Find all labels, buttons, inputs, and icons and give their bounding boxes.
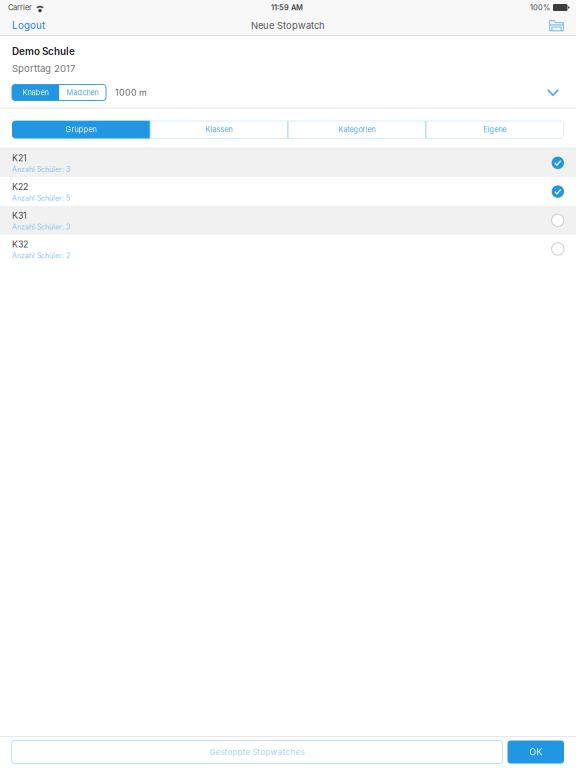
staticText: 100% [530, 3, 550, 12]
button[interactable]: Folders [539, 15, 576, 36]
button[interactable]: Logout [0, 15, 55, 36]
staticText: Klassen [205, 125, 232, 134]
staticText: K22 [12, 181, 28, 192]
staticText: 1000 m [115, 87, 147, 98]
staticText: Carrier [8, 3, 32, 12]
staticText: Kategorien [338, 125, 375, 134]
staticText: Mädchen [66, 88, 98, 97]
button[interactable]: Klassen [150, 121, 288, 138]
button[interactable]: Gruppen [12, 121, 150, 138]
staticText: K21 [12, 153, 27, 163]
staticText: Anzahl Schüler: 2 [12, 251, 70, 260]
staticText: Neue Stopwatch [251, 20, 325, 31]
button[interactable]: K22 [0, 177, 576, 206]
button[interactable]: Kategorien [288, 121, 426, 138]
staticText: OK [529, 747, 542, 757]
staticText: Eigene [483, 125, 506, 134]
staticText: Anzahl Schüler: 3 [12, 223, 70, 231]
button[interactable]: Knaben [12, 84, 59, 100]
staticText: K32 [12, 239, 28, 249]
staticText: Anzahl Schüler: 5 [12, 194, 70, 202]
staticText: Anzahl Schüler: 3 [12, 165, 70, 174]
button[interactable]: OK [507, 740, 564, 763]
staticText: Logout [12, 19, 45, 31]
staticText: 11:59 AM [271, 3, 303, 12]
button[interactable]: Mädchen [59, 84, 106, 100]
staticText: Gruppen [65, 125, 96, 134]
button[interactable]: K32 [0, 235, 576, 263]
staticText: Sporttag 2017 [12, 63, 75, 74]
staticText: K31 [12, 210, 27, 221]
button[interactable]: Expand [542, 84, 564, 101]
button[interactable]: Eigene [426, 121, 564, 138]
button[interactable]: K21 [0, 148, 576, 177]
button[interactable]: K31 [0, 206, 576, 235]
staticText: Knaben [22, 88, 48, 97]
button[interactable]: Gestoppte Stopwatches [11, 740, 502, 763]
staticText: Gestoppte Stopwatches [209, 747, 304, 757]
staticText: Demo Schule [12, 45, 75, 57]
